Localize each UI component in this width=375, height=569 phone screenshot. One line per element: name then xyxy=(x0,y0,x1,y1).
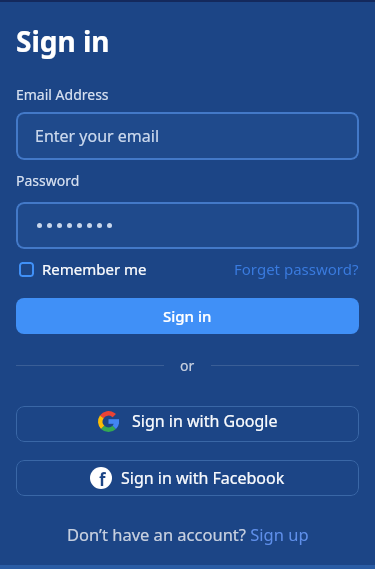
staticText: Sign in with Google xyxy=(132,410,278,432)
button[interactable]: Don’t have an account? Sign up xyxy=(67,523,309,545)
button[interactable]: f xyxy=(16,460,359,496)
staticText: Remember me xyxy=(42,259,147,279)
staticText: or xyxy=(180,356,195,375)
staticText: Sign in xyxy=(16,22,110,60)
button[interactable]: Sign in with Google xyxy=(16,406,359,442)
staticText: Sign in xyxy=(163,306,212,326)
button[interactable]: Forget password? xyxy=(234,259,359,279)
staticText: Enter your email xyxy=(35,125,160,147)
staticText: f xyxy=(99,468,106,489)
button[interactable]: Remember me xyxy=(16,259,147,279)
staticText: Email Address xyxy=(16,85,109,104)
button[interactable]: Sign in xyxy=(16,298,359,334)
button[interactable]: Enter your email xyxy=(16,112,359,160)
staticText: Password xyxy=(16,171,80,190)
staticText: Sign in with Facebook xyxy=(121,467,285,489)
button[interactable] xyxy=(16,202,359,249)
